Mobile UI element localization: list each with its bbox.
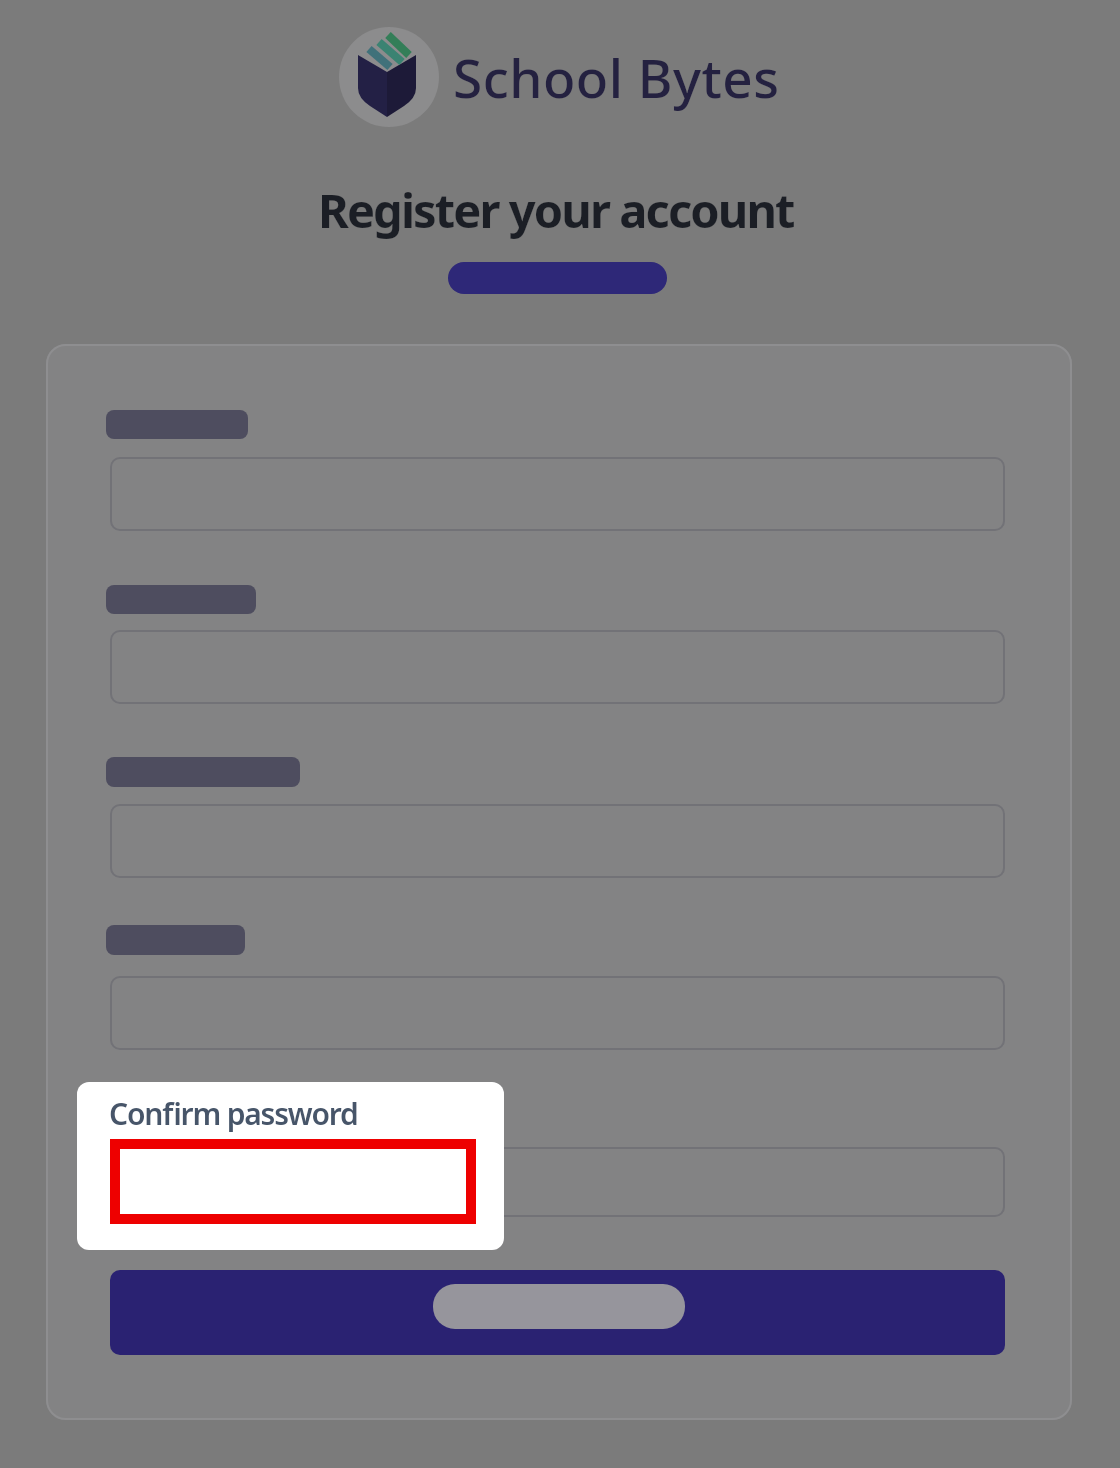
staticText: School Bytes	[453, 41, 780, 113]
button[interactable]	[110, 630, 1005, 704]
button[interactable]	[110, 976, 1005, 1050]
button[interactable]	[110, 804, 1005, 878]
button[interactable]	[110, 1270, 1005, 1355]
button[interactable]	[110, 457, 1005, 531]
staticText: Confirm password	[109, 1093, 358, 1134]
button[interactable]	[110, 1147, 1005, 1217]
staticText: Register your account	[318, 178, 794, 242]
